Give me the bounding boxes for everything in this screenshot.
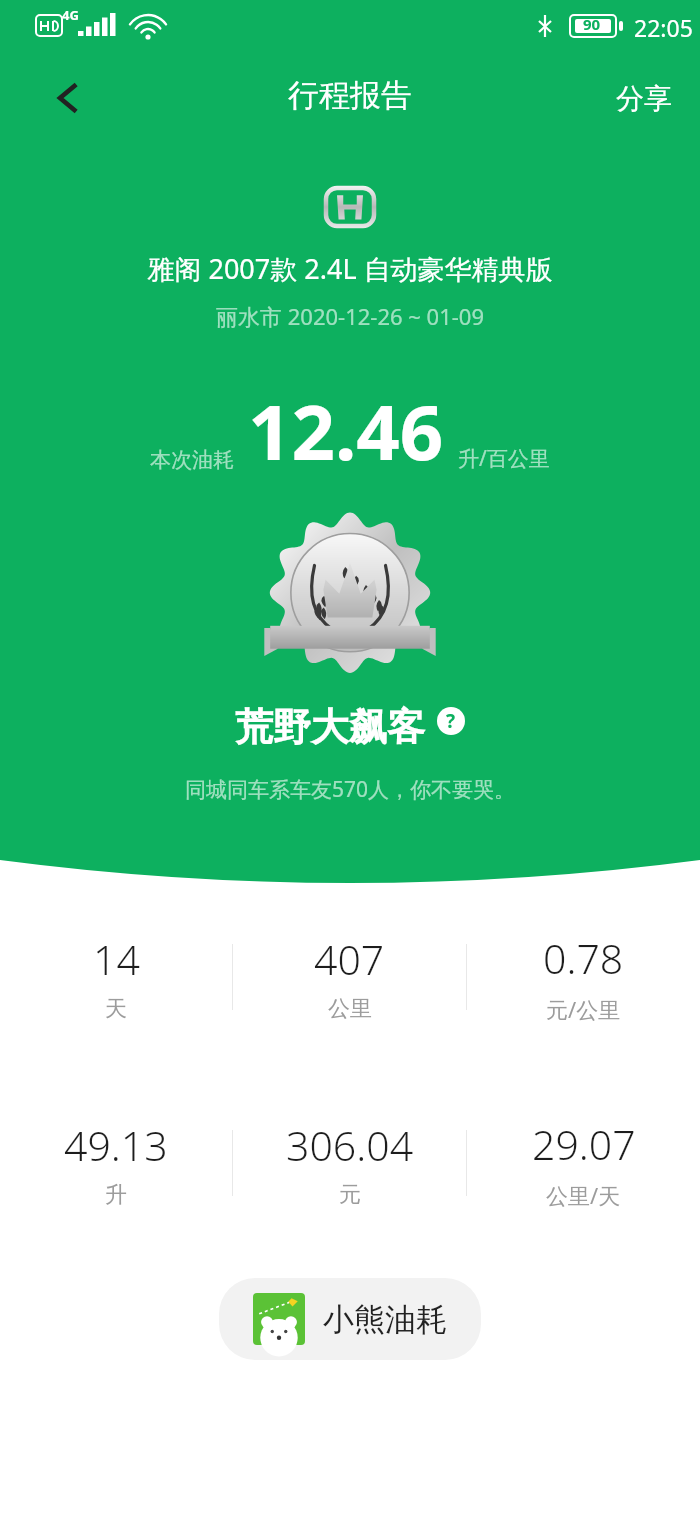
staticText: 升 [105, 1181, 127, 1209]
staticText: 本次油耗 [150, 447, 234, 473]
staticText: 行程报告 [0, 76, 700, 115]
staticText: 荒野大飙客 [235, 703, 425, 751]
staticText: 升/百公里 [458, 444, 550, 473]
staticText: 天 [105, 995, 127, 1023]
staticText: 元/公里 [546, 994, 621, 1024]
staticText: 同城同车系车友570人，你不要哭。 [0, 775, 700, 804]
staticText: 90 [583, 14, 601, 34]
staticText: 分享 [616, 81, 672, 116]
button[interactable]: 返回 [22, 52, 114, 144]
staticText: 雅阁 2007款 2.4L 自动豪华精典版 [0, 250, 700, 287]
button[interactable]: 帮助 [437, 707, 465, 735]
staticText: 306.04 [286, 1117, 414, 1173]
staticText: 元 [339, 1181, 361, 1209]
staticText: ? [446, 708, 456, 734]
staticText: 29.07 [532, 1116, 636, 1172]
staticText: 公里/天 [546, 1180, 621, 1210]
staticText: 12.46 [248, 379, 444, 483]
staticText: 丽水市 2020-12-26 ~ 01-09 [0, 301, 700, 331]
staticText: 14 [93, 931, 140, 987]
staticText: 公里 [328, 995, 372, 1023]
staticText: 4G [62, 6, 79, 24]
staticText: 0.78 [543, 930, 624, 986]
staticText: 49.13 [64, 1117, 168, 1173]
button[interactable]: 分享 [588, 59, 700, 138]
staticText: 407 [314, 931, 385, 987]
button[interactable]: 小熊油耗 [219, 1278, 481, 1360]
staticText: 小熊油耗 [323, 1300, 447, 1339]
staticText: 22:05 [634, 12, 693, 43]
